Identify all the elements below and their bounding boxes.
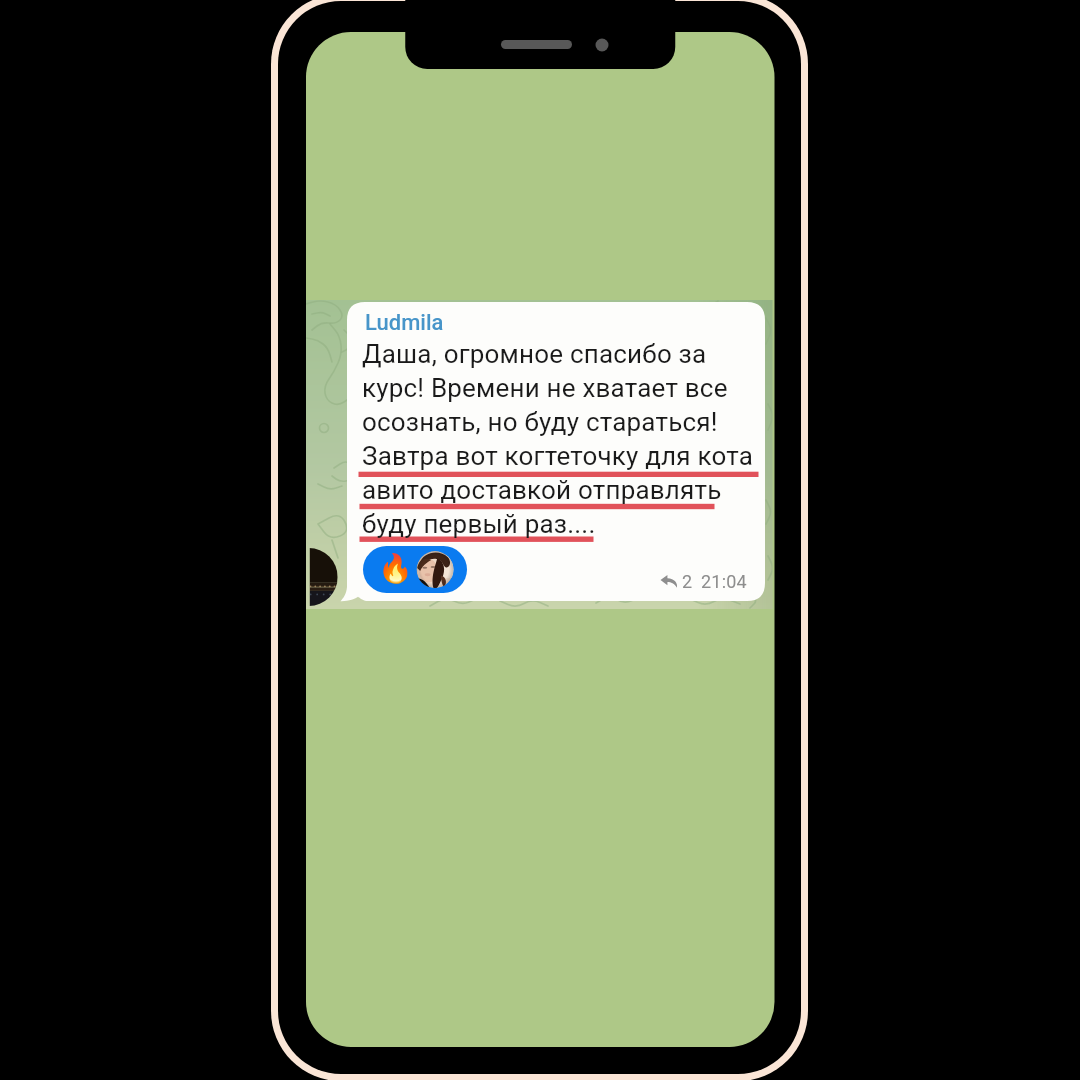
- staticText: Даша, огромное спасибо за: [362, 339, 707, 369]
- staticText: буду первый раз....: [362, 509, 596, 539]
- button[interactable]: 2 replies, sent at 21:04: [655, 566, 751, 594]
- button[interactable]: Ludmila: [365, 310, 444, 336]
- staticText: 2: [682, 571, 693, 592]
- button[interactable]: Message from Ludmila: [347, 302, 765, 601]
- staticText: 21:04: [701, 571, 747, 592]
- staticText: осознать, но буду стараться!: [362, 407, 718, 437]
- staticText: Ludmila: [365, 310, 444, 336]
- button[interactable]: Open Ludmila's profile photo: [306, 548, 336, 606]
- staticText: Завтра вот когтеточку для кота: [362, 441, 753, 471]
- button[interactable]: Fire reaction, 1 person: [363, 546, 467, 593]
- staticText: курс! Времени не хватает все: [362, 373, 728, 403]
- staticText: 🔥: [378, 552, 413, 585]
- staticText: авито доставкой отправлять: [362, 475, 722, 505]
